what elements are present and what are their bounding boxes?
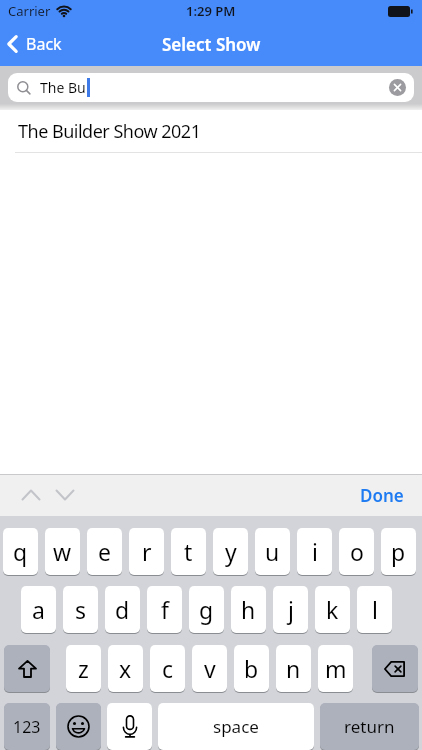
staticText: l [372, 594, 378, 625]
button[interactable]: u [255, 528, 290, 575]
button[interactable]: c [150, 645, 185, 692]
button[interactable] [56, 703, 101, 750]
button[interactable]: t [171, 528, 206, 575]
button[interactable] [55, 489, 75, 501]
button[interactable]: The Builder Show 2021 [0, 110, 422, 152]
staticText: n [286, 653, 301, 684]
button[interactable]: x [108, 645, 143, 692]
staticText: j [288, 594, 294, 625]
staticText: w [53, 536, 72, 567]
staticText: a [32, 594, 45, 625]
button[interactable] [107, 703, 152, 750]
staticText: o [350, 536, 364, 567]
button[interactable]: h [231, 586, 266, 633]
staticText: space [213, 715, 259, 738]
button[interactable]: e [87, 528, 122, 575]
button[interactable]: b [234, 645, 269, 692]
staticText: The Bu [40, 78, 86, 97]
staticText: g [199, 594, 214, 625]
button[interactable]: v [192, 645, 227, 692]
button[interactable]: g [189, 586, 224, 633]
button[interactable]: k [315, 586, 350, 633]
staticText: Select Show [162, 33, 261, 56]
staticText: y [225, 536, 237, 567]
button[interactable]: w [45, 528, 80, 575]
button[interactable]: j [273, 586, 308, 633]
button[interactable]: Back [7, 33, 62, 55]
staticText: h [241, 594, 256, 625]
staticText: p [391, 536, 406, 567]
button[interactable]: The Bu [8, 73, 414, 102]
button[interactable]: z [66, 645, 101, 692]
staticText: v [204, 653, 216, 684]
button[interactable]: space [158, 703, 314, 750]
staticText: 123 [13, 716, 41, 738]
staticText: x [119, 653, 132, 684]
button[interactable]: f [147, 586, 182, 633]
button[interactable]: n [276, 645, 311, 692]
staticText: m [325, 653, 347, 684]
button[interactable] [21, 489, 41, 501]
staticText: k [326, 594, 339, 625]
button[interactable] [389, 79, 406, 96]
staticText: The Builder Show 2021 [18, 119, 201, 144]
button[interactable]: a [21, 586, 56, 633]
button[interactable]: p [381, 528, 416, 575]
staticText: f [161, 594, 169, 625]
staticText: u [265, 536, 280, 567]
button[interactable]: r [129, 528, 164, 575]
button[interactable]: m [318, 645, 353, 692]
button[interactable]: l [357, 586, 392, 633]
button[interactable]: 123 [4, 703, 50, 750]
button[interactable]: return [320, 703, 419, 750]
button[interactable]: d [105, 586, 140, 633]
staticText: i [312, 536, 318, 567]
button[interactable]: o [339, 528, 374, 575]
staticText: 1:29 PM [186, 2, 236, 20]
staticText: s [75, 594, 87, 625]
staticText: b [244, 653, 259, 684]
staticText: d [115, 594, 130, 625]
staticText: e [98, 536, 111, 567]
staticText: z [78, 653, 89, 684]
staticText: c [162, 653, 174, 684]
button[interactable]: y [213, 528, 248, 575]
staticText: return [344, 715, 395, 738]
button[interactable]: i [297, 528, 332, 575]
button[interactable]: Done [360, 484, 404, 507]
button[interactable] [4, 645, 50, 692]
button[interactable] [372, 645, 418, 692]
staticText: q [13, 536, 28, 567]
staticText: Done [360, 484, 404, 507]
staticText: r [142, 536, 152, 567]
button[interactable]: q [3, 528, 38, 575]
button[interactable]: s [63, 586, 98, 633]
staticText: Carrier [8, 2, 51, 20]
staticText: t [184, 536, 193, 567]
staticText: Back [26, 33, 62, 55]
